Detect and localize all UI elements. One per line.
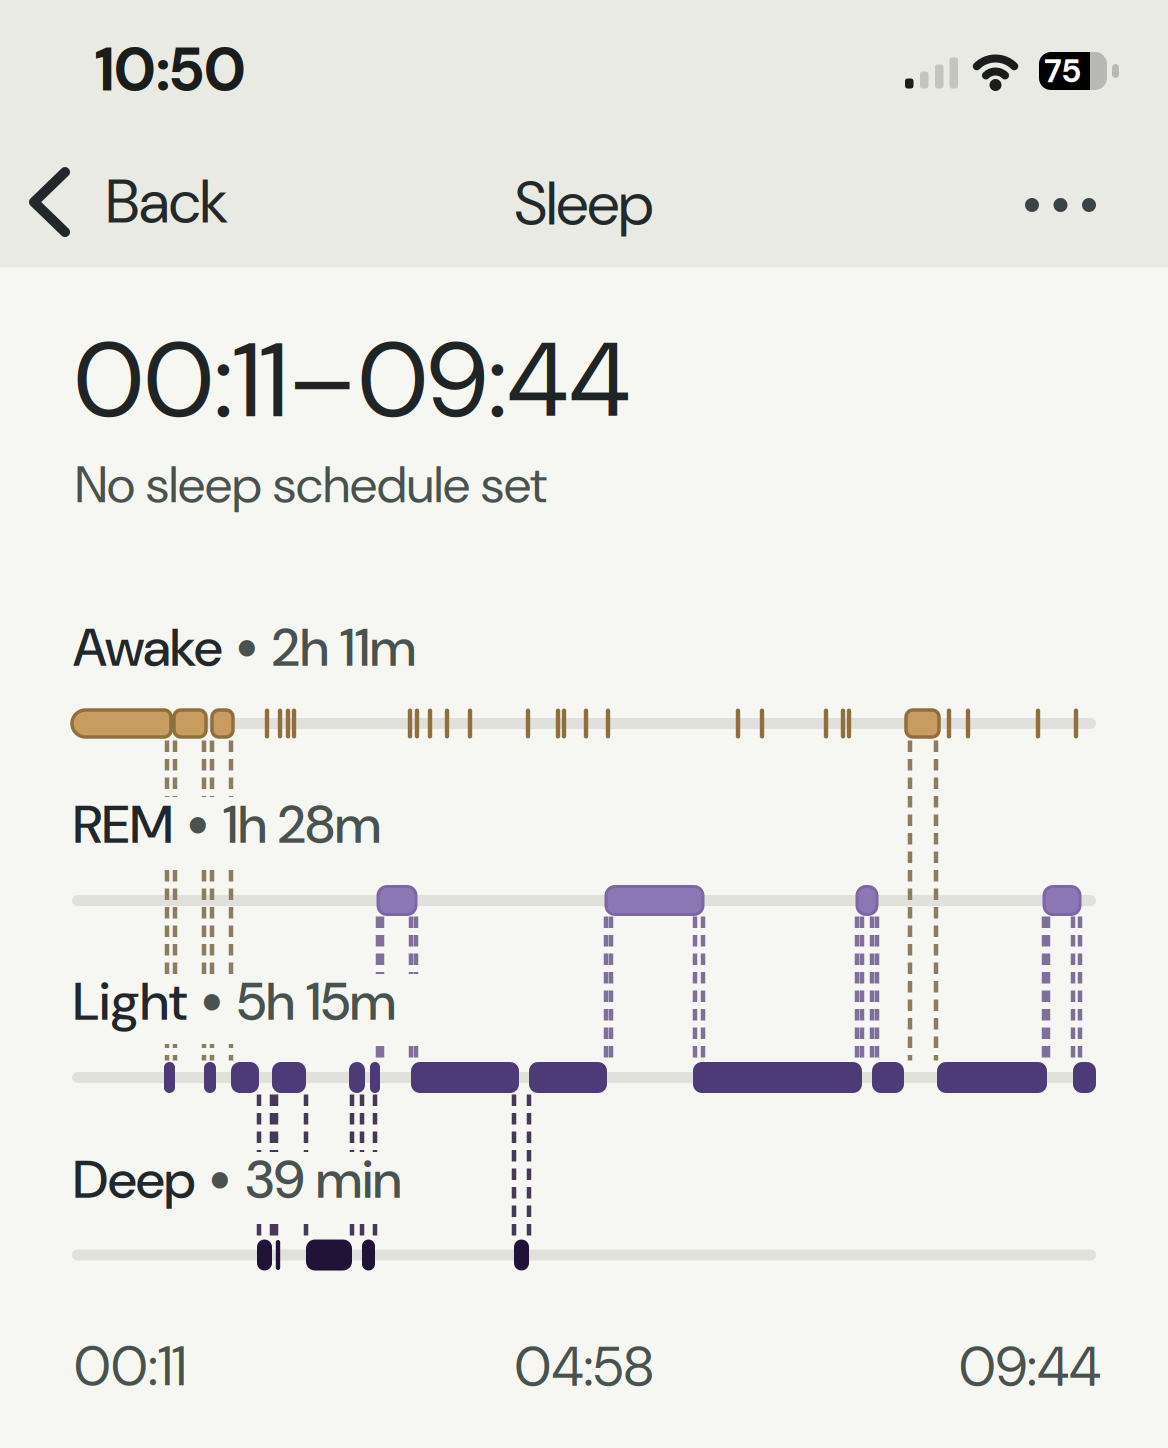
staticText: •	[200, 960, 224, 1043]
staticText: Back	[106, 163, 228, 241]
button[interactable]: Back	[29, 163, 228, 241]
staticText: 00:11	[74, 1331, 186, 1402]
staticText: 2h 11m	[272, 613, 416, 682]
staticText: 39 min	[245, 1145, 402, 1214]
staticText: 10:50	[95, 31, 246, 109]
staticText: No sleep schedule set	[75, 452, 547, 518]
staticText: 09:44	[959, 1331, 1101, 1403]
staticText: 1h 28m	[223, 790, 381, 859]
staticText: Deep	[73, 1145, 195, 1214]
staticText: 5h 15m	[237, 967, 396, 1036]
staticText: •	[208, 1138, 232, 1221]
staticText: Sleep	[514, 165, 653, 243]
staticText: •	[235, 606, 259, 689]
staticText: Light	[73, 967, 187, 1036]
staticText: 04:58	[514, 1331, 653, 1403]
staticText: 75	[1044, 49, 1082, 93]
staticText: Awake	[73, 613, 222, 682]
button[interactable]	[1025, 198, 1096, 212]
staticText: 00:11–09:44	[74, 313, 631, 448]
staticText: REM	[73, 790, 173, 859]
staticText: •	[186, 783, 210, 866]
